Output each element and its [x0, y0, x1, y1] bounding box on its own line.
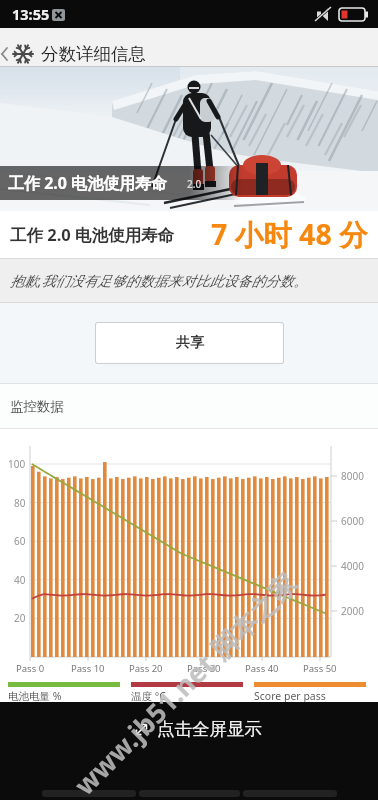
staticText: Score per pass [254, 689, 326, 703]
staticText: 共享 [176, 334, 204, 352]
staticText: 温度 °C [131, 689, 166, 703]
staticText: 分数详细信息 [41, 43, 146, 65]
staticText: 抱歉,我们没有足够的数据来对比此设备的分数。 [10, 271, 308, 290]
staticText: 7 小时 48 分 [211, 215, 368, 254]
staticText: 8000 [341, 469, 364, 483]
button[interactable] [42, 790, 136, 797]
staticText: 13:55 [12, 4, 50, 24]
staticText: 2.0 [187, 177, 202, 191]
staticText: Pass 50 [303, 662, 337, 675]
staticText: Pass 0 [16, 662, 45, 675]
staticText: 工作 2.0 电池使用寿命 [10, 223, 175, 246]
staticText: www.jb51.net 脚本之家 [66, 564, 304, 800]
button[interactable]: 点击全屏显示 [133, 718, 262, 740]
staticText: 100 [8, 457, 26, 471]
staticText: 电池电量 % [8, 689, 62, 703]
button[interactable]: 分数详细信息 [0, 34, 146, 73]
staticText: 60 [14, 534, 26, 548]
staticText: 工作 2.0 电池使用寿命 [8, 172, 168, 194]
staticText: Pass 10 [71, 662, 105, 675]
staticText: 监控数据 [10, 398, 64, 415]
staticText: 80 [14, 496, 26, 510]
staticText: Pass 20 [129, 662, 163, 675]
staticText: Pass 40 [245, 662, 279, 675]
staticText: 2000 [341, 604, 364, 618]
staticText: 点击全屏显示 [157, 718, 262, 740]
staticText: 4000 [341, 559, 364, 573]
staticText: 40 [14, 573, 26, 587]
staticText: Pass 30 [187, 662, 221, 675]
staticText: 20 [14, 611, 26, 625]
button[interactable]: 共享 [96, 323, 283, 363]
staticText: 6000 [341, 514, 364, 528]
